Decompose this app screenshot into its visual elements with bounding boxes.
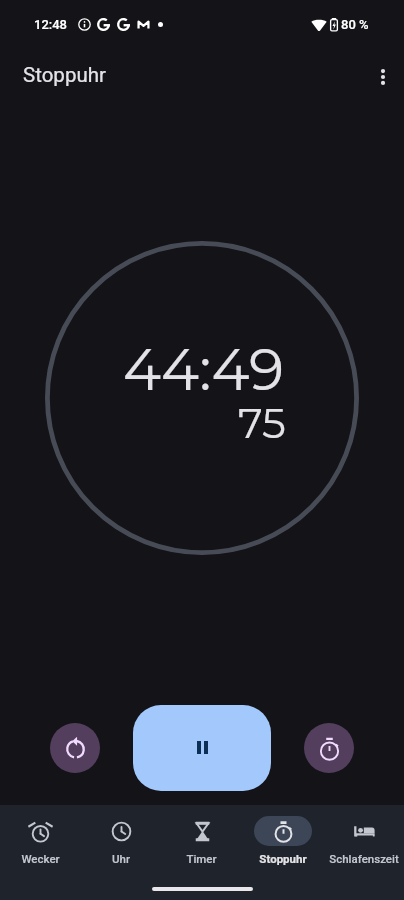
staticText: 44:49	[123, 334, 285, 404]
button[interactable]: Stoppuhr	[242, 805, 323, 865]
button[interactable]: Wecker	[0, 805, 80, 865]
button[interactable]: Uhr	[80, 805, 161, 865]
button[interactable]: Lap	[304, 723, 354, 773]
staticText: 12:48	[34, 17, 67, 32]
staticText: Wecker	[21, 852, 60, 865]
button[interactable]: Timer	[161, 805, 242, 865]
staticText: Stoppuhr	[23, 63, 106, 87]
staticText: Uhr	[112, 852, 130, 865]
button[interactable]: More options	[363, 57, 403, 97]
staticText: 80 %	[341, 17, 369, 32]
button[interactable]: Schlafenszeit	[323, 805, 404, 865]
staticText: Schlafenszeit	[329, 852, 399, 865]
staticText: 75	[238, 397, 286, 448]
staticText: Timer	[186, 852, 217, 865]
button[interactable]: Reset	[50, 723, 100, 773]
staticText: Stoppuhr	[259, 852, 307, 865]
button[interactable]: Pause	[133, 705, 271, 791]
